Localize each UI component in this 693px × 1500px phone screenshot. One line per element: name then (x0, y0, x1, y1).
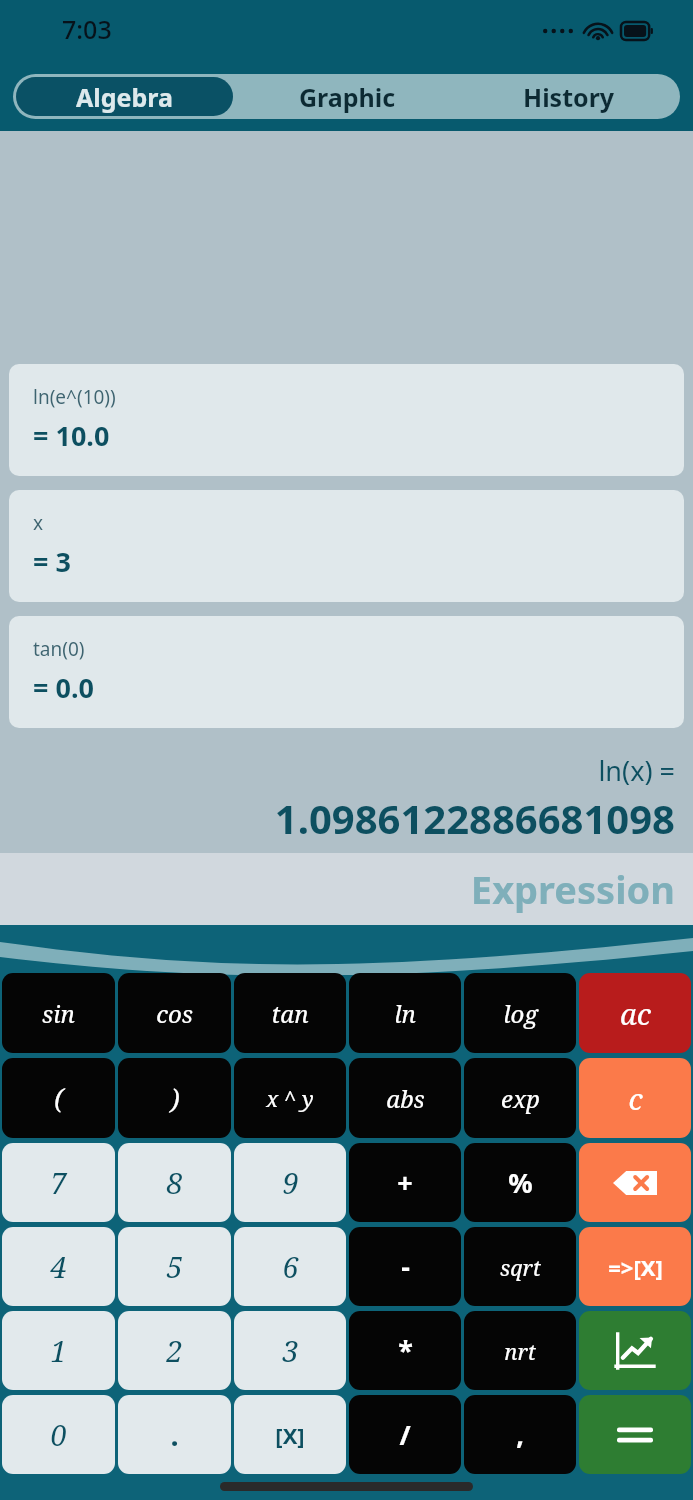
staticText: 6 (282, 1247, 299, 1286)
button[interactable]: 3 (234, 1311, 346, 1390)
button[interactable]: 7 (2, 1143, 115, 1222)
staticText: History (523, 80, 615, 114)
button[interactable]: log (464, 973, 576, 1053)
button[interactable]: c (579, 1058, 691, 1138)
staticText: + (397, 1164, 413, 1201)
staticText: cos (156, 997, 193, 1030)
button[interactable]: 4 (2, 1227, 115, 1306)
button[interactable]: 6 (234, 1227, 346, 1306)
button[interactable]: 1 (2, 1311, 115, 1390)
button[interactable]: abs (349, 1058, 461, 1138)
button[interactable]: x (9, 490, 684, 602)
button[interactable]: Graph (579, 1311, 691, 1390)
staticText: * (398, 1332, 413, 1369)
button[interactable]: + (349, 1143, 461, 1222)
staticText: ln (394, 997, 416, 1030)
button[interactable]: ( (2, 1058, 115, 1138)
staticText: 8 (166, 1163, 183, 1202)
staticText: 7:03 (62, 12, 112, 46)
staticText: 7 (50, 1163, 67, 1202)
button[interactable]: =>[X] (579, 1227, 691, 1306)
button[interactable]: 0 (2, 1395, 115, 1474)
staticText: 1 (50, 1331, 67, 1370)
staticText: / (399, 1416, 411, 1453)
staticText: ) (170, 1080, 180, 1117)
button[interactable]: Equals (579, 1395, 691, 1474)
staticText: tan(0) (33, 636, 85, 662)
staticText: 9 (282, 1163, 299, 1202)
button[interactable]: sin (2, 973, 115, 1053)
staticText: 5 (166, 1247, 183, 1286)
staticText: ( (54, 1080, 64, 1117)
button[interactable]: tan (234, 973, 346, 1053)
button[interactable]: Backspace (579, 1143, 691, 1222)
staticText: 4 (50, 1247, 67, 1286)
button[interactable]: x ^ y (234, 1058, 346, 1138)
button[interactable]: % (464, 1143, 576, 1222)
staticText: - (401, 1248, 410, 1285)
button[interactable]: [X] (234, 1395, 346, 1474)
button[interactable]: - (349, 1227, 461, 1306)
button[interactable]: 5 (118, 1227, 231, 1306)
staticText: x ^ y (266, 1083, 314, 1113)
staticText: Expression (470, 863, 675, 915)
staticText: 2 (166, 1331, 183, 1370)
button[interactable]: ac (579, 973, 691, 1053)
staticText: tan (271, 997, 309, 1030)
button[interactable]: Algebra (16, 77, 233, 116)
staticText: Algebra (76, 80, 173, 114)
button[interactable]: , (464, 1395, 576, 1474)
button[interactable]: 2 (118, 1311, 231, 1390)
staticText: = 3 (33, 543, 71, 580)
staticText: abs (386, 1082, 425, 1115)
staticText: ln(x) = (0, 752, 675, 789)
staticText: c (628, 1079, 643, 1118)
staticText: =>[X] (608, 1252, 663, 1282)
staticText: = 10.0 (33, 417, 110, 454)
button[interactable]: nrt (464, 1311, 576, 1390)
button[interactable]: sqrt (464, 1227, 576, 1306)
button[interactable]: / (349, 1395, 461, 1474)
button[interactable]: * (349, 1311, 461, 1390)
staticText: ac (620, 994, 651, 1033)
staticText: x (33, 510, 44, 536)
staticText: , (516, 1416, 524, 1453)
staticText: [X] (275, 1420, 305, 1450)
button[interactable]: ln(e^(10)) (9, 364, 684, 476)
staticText: Graphic (299, 80, 396, 114)
button[interactable]: History (458, 74, 680, 119)
staticText: = 0.0 (33, 669, 94, 706)
button[interactable]: 8 (118, 1143, 231, 1222)
staticText: 1.0986122886681098 (0, 791, 675, 845)
staticText: exp (501, 1082, 540, 1115)
staticText: sin (42, 997, 75, 1030)
staticText: 3 (282, 1331, 299, 1370)
button[interactable]: Graphic (236, 74, 458, 119)
button[interactable]: exp (464, 1058, 576, 1138)
button[interactable]: ) (118, 1058, 231, 1138)
staticText: 0 (50, 1415, 67, 1454)
staticText: sqrt (500, 1252, 541, 1282)
button[interactable]: ln (349, 973, 461, 1053)
button[interactable]: tan(0) (9, 616, 684, 728)
staticText: % (508, 1164, 533, 1201)
staticText: log (503, 997, 538, 1030)
staticText: . (170, 1415, 179, 1454)
button[interactable]: cos (118, 973, 231, 1053)
staticText: nrt (504, 1336, 536, 1366)
button[interactable]: . (118, 1395, 231, 1474)
button[interactable]: 9 (234, 1143, 346, 1222)
staticText: ln(e^(10)) (33, 384, 116, 410)
